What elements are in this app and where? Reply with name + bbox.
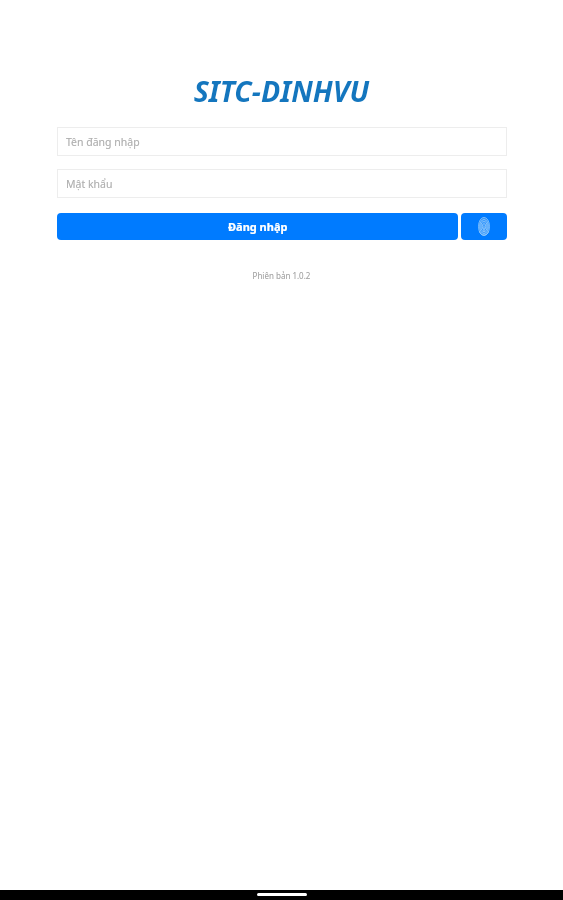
button[interactable]: Fingerprint login <box>461 213 507 240</box>
staticText: Đăng nhập <box>228 219 288 234</box>
button[interactable]: Mật khẩu <box>57 169 507 198</box>
staticText: Tên đăng nhập <box>66 135 140 149</box>
staticText: SITC-DINHVU <box>0 72 563 111</box>
staticText: Mật khẩu <box>66 177 113 191</box>
staticText: Phiên bản 1.0.2 <box>0 270 563 281</box>
button[interactable]: Đăng nhập <box>57 213 458 240</box>
button[interactable]: Tên đăng nhập <box>57 127 507 156</box>
